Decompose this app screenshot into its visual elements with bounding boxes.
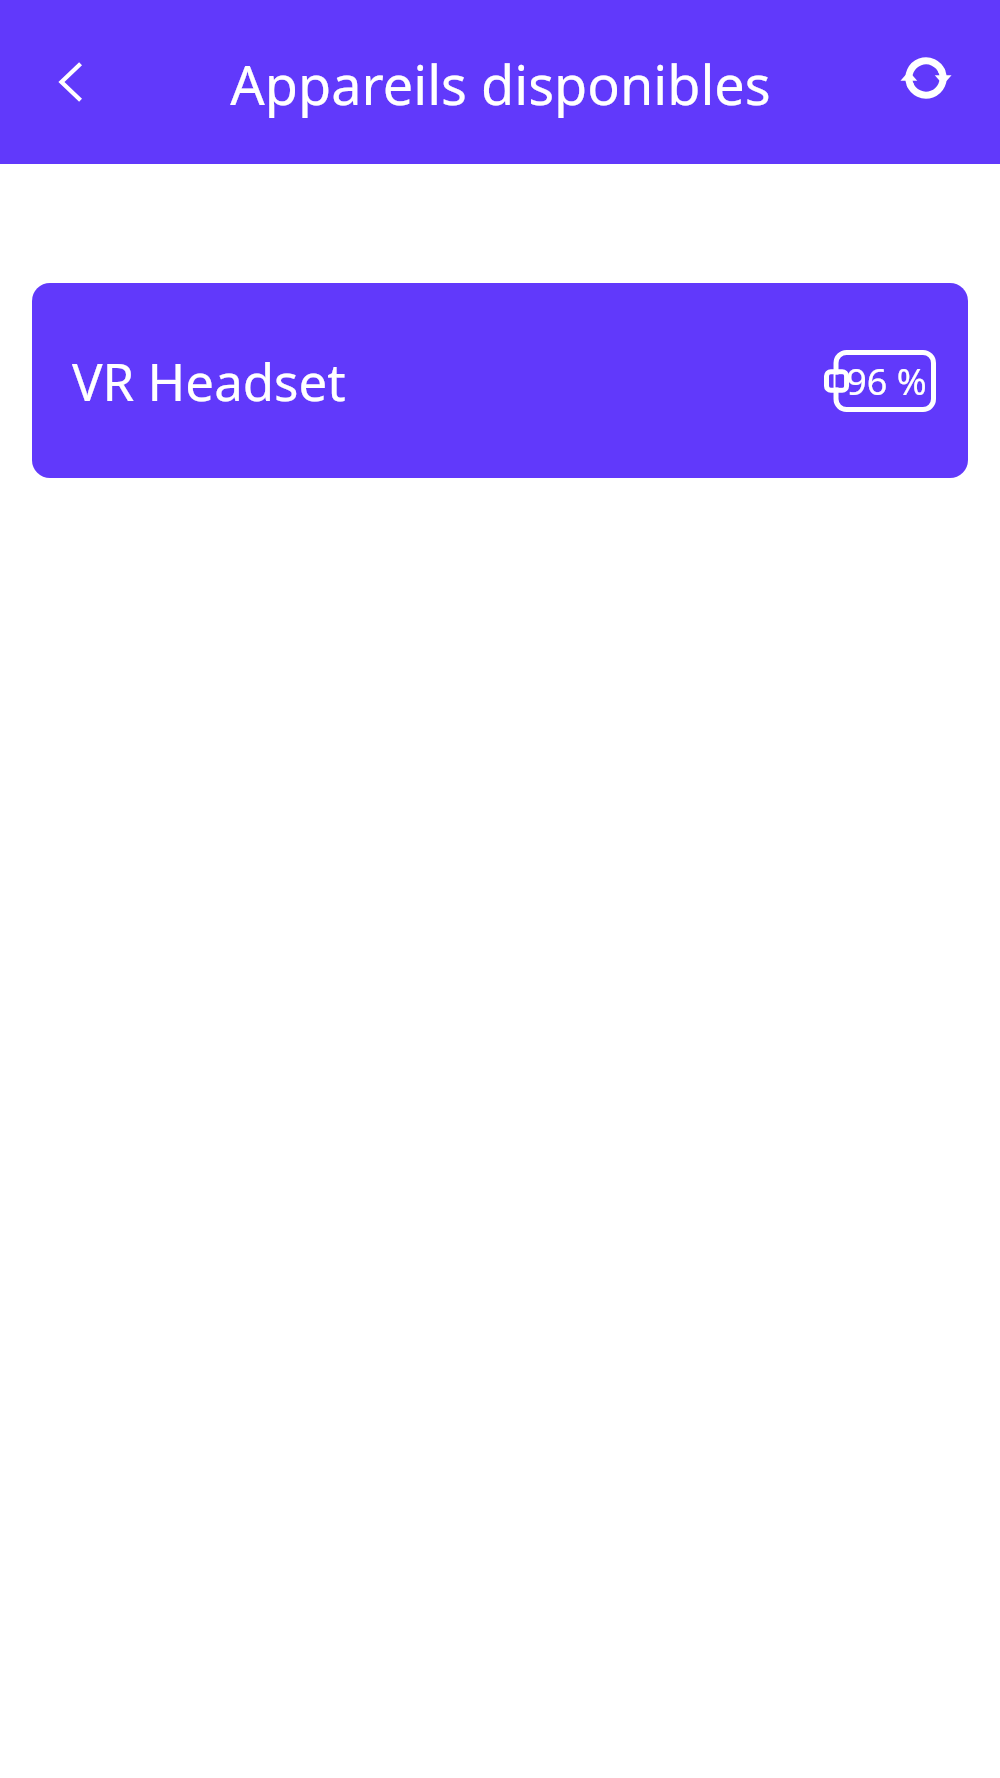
button[interactable]: VR Headset — [32, 283, 968, 478]
button[interactable]: Back — [30, 40, 114, 124]
staticText: VR Headset — [72, 346, 346, 415]
staticText: 96 % — [846, 357, 927, 406]
button[interactable]: Refresh — [882, 34, 970, 122]
staticText: Appareils disponibles — [230, 47, 771, 121]
